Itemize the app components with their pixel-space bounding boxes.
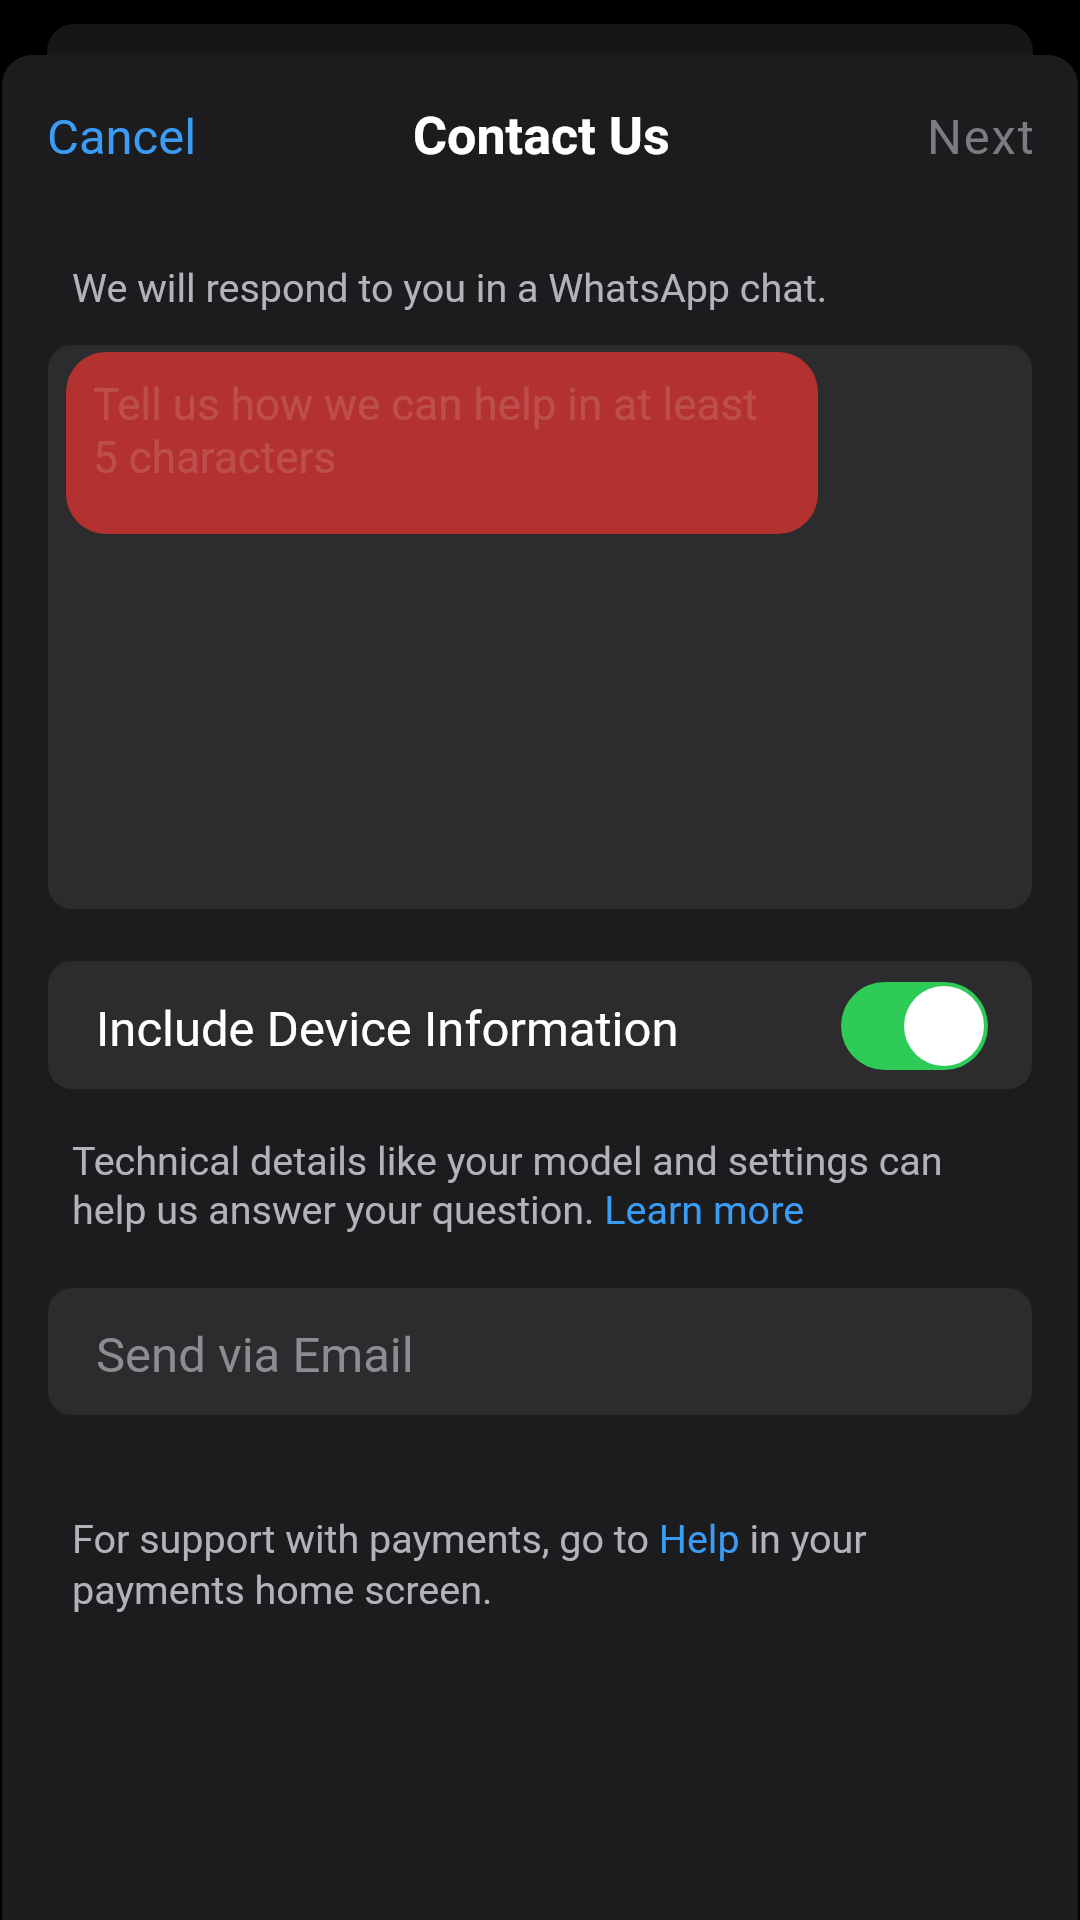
- staticText: Technical details like your model and se…: [72, 1138, 962, 1233]
- staticText: Next: [927, 109, 1036, 166]
- button[interactable]: Learn more: [606, 1187, 808, 1235]
- button[interactable]: Tell us how we can help in at least 5 ch…: [48, 345, 1032, 909]
- staticText: Contact Us: [413, 106, 670, 167]
- staticText: Include Device Information: [96, 1001, 679, 1058]
- button[interactable]: Help: [660, 1515, 744, 1563]
- button[interactable]: Include Device Information toggle: [841, 982, 988, 1070]
- staticText: Tell us how we can help in at least 5 ch…: [93, 379, 758, 484]
- button[interactable]: Next: [891, 77, 1072, 198]
- button[interactable]: Cancel: [7, 77, 237, 198]
- staticText: Send via Email: [96, 1327, 414, 1384]
- staticText: For support with payments, go to Help in…: [72, 1516, 902, 1614]
- staticText: Cancel: [47, 109, 197, 166]
- button[interactable]: Include Device Information: [48, 961, 1032, 1089]
- staticText: We will respond to you in a WhatsApp cha…: [72, 265, 828, 311]
- button[interactable]: Send via Email: [48, 1288, 1032, 1415]
